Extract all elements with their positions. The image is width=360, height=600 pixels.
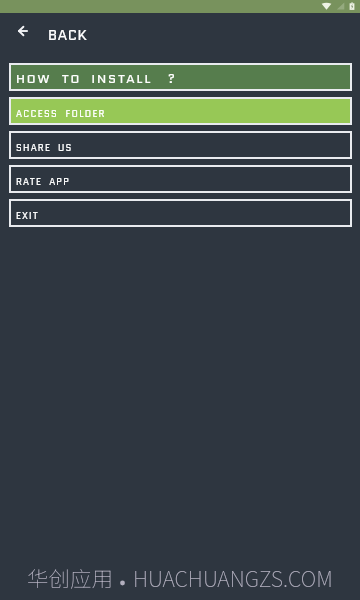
button[interactable]: ACCESS FOLDER	[9, 97, 352, 125]
staticText: 华创应用	[27, 562, 114, 593]
staticText: RATE APP	[16, 175, 71, 188]
staticText: EXIT	[16, 209, 40, 222]
button[interactable]: SHARE US	[9, 131, 352, 159]
staticText: HOW TO INSTALL ?	[16, 70, 177, 88]
button[interactable]: Back	[9, 17, 37, 45]
staticText: BACK	[48, 25, 88, 45]
button[interactable]: EXIT	[9, 199, 352, 227]
button[interactable]: RATE APP	[9, 165, 352, 193]
staticText: SHARE US	[16, 141, 73, 154]
button[interactable]: HOW TO INSTALL ?	[9, 63, 352, 91]
staticText: ACCESS FOLDER	[16, 107, 106, 120]
staticText: HUACHUANGZS.COM	[133, 562, 333, 593]
